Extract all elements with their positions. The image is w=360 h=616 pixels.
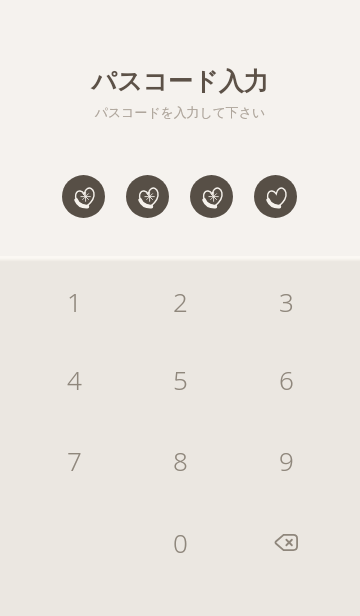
button[interactable]: 3 (233, 261, 339, 341)
staticText: 4 (67, 362, 82, 397)
staticText: 8 (173, 443, 188, 478)
button[interactable]: 4 (21, 339, 127, 419)
staticText: 1 (67, 284, 82, 319)
staticText: 2 (173, 284, 188, 319)
other: Passcode digit 2 (126, 175, 169, 218)
staticText: 7 (67, 443, 82, 478)
button[interactable]: 0 (127, 502, 233, 582)
button[interactable]: 8 (127, 420, 233, 500)
button[interactable]: 9 (233, 420, 339, 500)
staticText: 6 (279, 362, 294, 397)
staticText: 3 (279, 284, 294, 319)
staticText: 0 (173, 525, 188, 560)
other: Passcode digit 3 (190, 175, 233, 218)
button[interactable]: 5 (127, 339, 233, 419)
button[interactable]: 1 (21, 261, 127, 341)
other: Passcode digit 1 (62, 175, 105, 218)
staticText: パスコード入力 (0, 66, 360, 97)
staticText: パスコードを入力して下さい (0, 105, 360, 121)
button[interactable]: Delete (233, 502, 339, 582)
button[interactable]: 2 (127, 261, 233, 341)
button[interactable]: 7 (21, 420, 127, 500)
staticText: 5 (173, 362, 188, 397)
button[interactable]: 6 (233, 339, 339, 419)
staticText: 9 (279, 443, 294, 478)
other: Passcode digit 4 (254, 175, 297, 218)
